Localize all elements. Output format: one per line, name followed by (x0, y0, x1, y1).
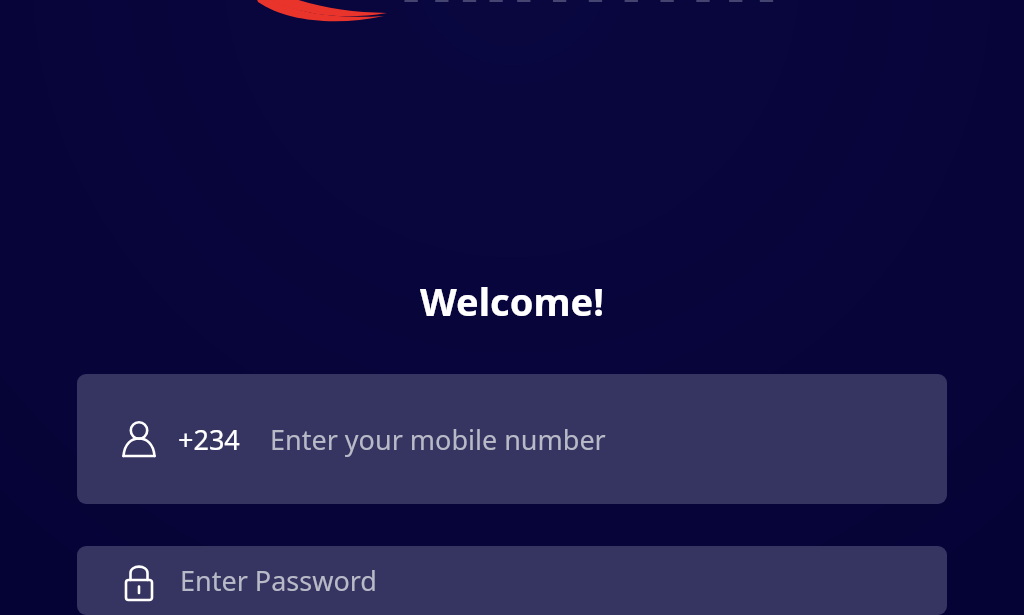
button[interactable]: Mobile number (77, 374, 947, 504)
staticText: Enter Password (180, 562, 377, 599)
other: Mobile number (118, 418, 160, 460)
other: Password (118, 560, 160, 602)
staticText: Welcome! (420, 275, 604, 327)
staticText: Enter your mobile number (270, 421, 606, 458)
staticText: +234 (178, 421, 240, 458)
button[interactable]: Password (77, 546, 947, 615)
